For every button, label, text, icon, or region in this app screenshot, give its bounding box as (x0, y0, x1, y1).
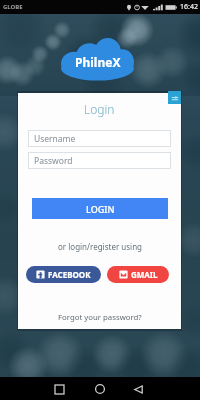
staticText: Password (34, 155, 73, 167)
staticText: GMAIL (131, 269, 158, 280)
staticText: PhilneX (75, 54, 121, 70)
staticText: Username (34, 133, 76, 145)
staticText: FACEBOOK (48, 269, 91, 280)
button[interactable]: Back (127, 378, 149, 400)
button[interactable]: Home (89, 378, 111, 400)
staticText: GLOBE (3, 3, 23, 11)
staticText: 16:42 (180, 2, 198, 12)
staticText: or login/register using (58, 241, 142, 252)
button[interactable]: FACEBOOK (26, 266, 101, 283)
button[interactable]: Recents (48, 378, 70, 400)
staticText: Login (84, 101, 115, 117)
staticText: LOGIN (86, 203, 115, 215)
button[interactable]: Username (28, 130, 171, 147)
button[interactable]: Settings (168, 91, 181, 104)
button[interactable]: Password (28, 152, 171, 169)
staticText: Forgot your password? (58, 312, 142, 323)
button[interactable]: LOGIN (32, 198, 168, 219)
button[interactable]: GMAIL (107, 266, 169, 283)
button[interactable]: Forgot your password? (18, 307, 181, 327)
